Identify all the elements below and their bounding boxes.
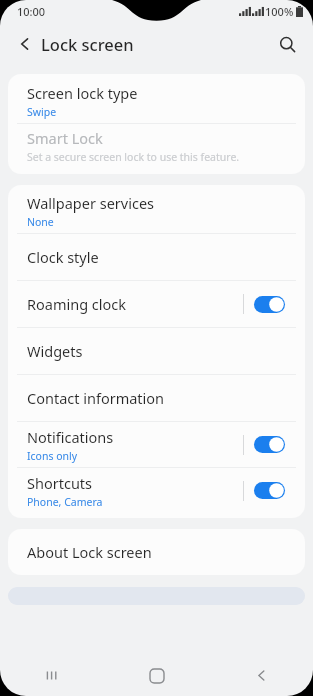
staticText: Shortcuts	[27, 473, 93, 493]
staticText: Lock screen	[41, 33, 134, 55]
staticText: Swipe	[27, 105, 57, 119]
staticText: Notifications	[27, 427, 114, 447]
button[interactable]: Roaming clock	[8, 281, 305, 327]
staticText: Smart Lock	[27, 128, 103, 148]
staticText: Icons only	[27, 449, 78, 463]
staticText: 10:00	[17, 4, 46, 19]
staticText: Clock style	[27, 247, 99, 267]
staticText: Phone, Camera	[27, 495, 103, 509]
staticText: Wallpaper services	[27, 193, 155, 213]
staticText: Screen lock type	[27, 83, 138, 103]
staticText: Roaming clock	[27, 294, 127, 314]
button[interactable]: Recent apps	[0, 655, 105, 696]
staticText: About Lock screen	[27, 542, 152, 562]
button[interactable]: Notifications	[8, 422, 305, 467]
staticText: Contact information	[27, 388, 165, 408]
button[interactable]: Clock style	[8, 234, 305, 280]
button[interactable]: Widgets	[8, 328, 305, 374]
button[interactable]: Wallpaper services	[8, 189, 305, 233]
button[interactable]: Search	[268, 25, 306, 63]
button[interactable]: Home	[105, 655, 209, 696]
button[interactable]: About Lock screen	[8, 529, 305, 575]
button[interactable]: Back	[6, 25, 44, 63]
staticText: Set a secure screen lock to use this fea…	[27, 150, 240, 164]
staticText: 100%	[265, 4, 294, 19]
button[interactable]: Smart Lock	[8, 124, 305, 168]
button[interactable]: Back	[209, 655, 313, 696]
staticText: None	[27, 215, 54, 229]
button[interactable]: Contact information	[8, 375, 305, 421]
button[interactable]: Shortcuts switch	[254, 482, 285, 499]
button[interactable]: Screen lock type	[8, 79, 305, 123]
button[interactable]: Shortcuts	[8, 468, 305, 513]
button[interactable]: Notifications switch	[254, 436, 285, 453]
staticText: Widgets	[27, 341, 83, 361]
button[interactable]: Roaming clock switch	[254, 296, 285, 313]
